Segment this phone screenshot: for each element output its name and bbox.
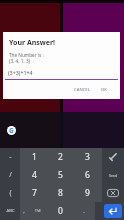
button[interactable]: Google (7, 126, 16, 135)
staticText: !?# (35, 208, 41, 214)
button[interactable]: 9 (73, 184, 102, 202)
button[interactable]: - (0, 148, 20, 166)
staticText: 3 (85, 151, 90, 163)
button[interactable]: 0 (48, 202, 73, 220)
staticText: CANCEL (74, 87, 90, 93)
button[interactable]: 3 (73, 148, 102, 166)
staticText: The Number is : (9, 52, 44, 58)
staticText: 4 (32, 169, 37, 181)
staticText: / (9, 170, 12, 180)
button[interactable]: ( (0, 184, 20, 202)
button[interactable]: Backspace (102, 148, 124, 166)
button[interactable]: CANCEL (71, 85, 93, 95)
staticText: , (23, 207, 25, 215)
staticText: 8 (58, 187, 63, 199)
button[interactable]: 4 (20, 166, 48, 184)
staticText: (3, 4, 1, 3) (9, 58, 30, 64)
button[interactable]: . (73, 202, 95, 220)
staticText: 6 (85, 169, 90, 181)
staticText: (3+3)*1*4 (8, 69, 33, 76)
button[interactable]: 8 (48, 184, 73, 202)
staticText: Your Answer! (9, 38, 56, 48)
staticText: OK (101, 87, 107, 93)
staticText: 2 (58, 151, 63, 163)
staticText: 0 (58, 205, 63, 217)
button[interactable]: ABC (0, 202, 20, 220)
button[interactable]: OK (98, 85, 110, 95)
button[interactable]: 6 (73, 166, 102, 184)
staticText: 5 (58, 169, 63, 181)
staticText: 9 (85, 187, 90, 199)
button[interactable]: / (0, 166, 20, 184)
staticText: G (9, 126, 14, 135)
staticText: 7 (32, 187, 37, 199)
staticText: 1 (32, 151, 37, 163)
staticText: . (83, 207, 85, 215)
staticText: - (9, 152, 12, 162)
staticText: ( (9, 188, 12, 198)
button[interactable]: 1 (20, 148, 48, 166)
button[interactable]: Send (102, 166, 124, 184)
button[interactable]: !?# (28, 202, 48, 220)
button[interactable]: 7 (20, 184, 48, 202)
staticText: ABC (6, 208, 15, 214)
button[interactable]: 2 (48, 148, 73, 166)
button[interactable]: Backspace (102, 184, 124, 202)
button[interactable]: Enter (104, 204, 122, 218)
staticText: Send (109, 173, 117, 178)
button[interactable]: 5 (48, 166, 73, 184)
button[interactable]: , (20, 202, 28, 220)
